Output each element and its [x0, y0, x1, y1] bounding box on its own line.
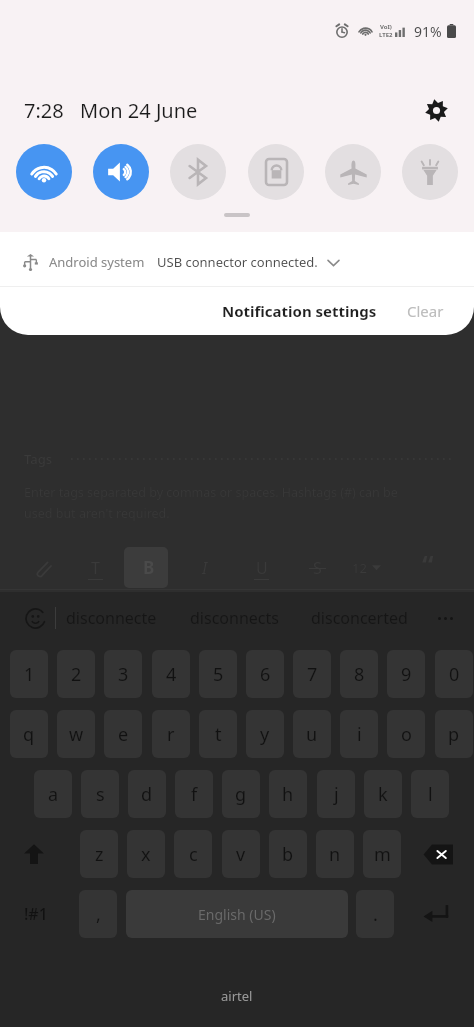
staticText: x	[141, 842, 151, 867]
button[interactable]: e	[104, 710, 142, 758]
staticText: airtel	[221, 987, 253, 1005]
staticText: I	[202, 557, 208, 579]
button[interactable]: 2	[57, 650, 95, 698]
button[interactable]: z	[80, 830, 118, 878]
button[interactable]: x	[127, 830, 165, 878]
button[interactable]: disconcerted	[311, 592, 408, 644]
staticText: q	[23, 722, 35, 747]
button[interactable]: disconnecte	[66, 592, 157, 644]
button[interactable]: Quick setting toggle	[93, 144, 149, 200]
staticText: e	[118, 722, 129, 747]
staticText: disconnecte	[66, 607, 157, 629]
button[interactable]: i	[340, 710, 378, 758]
button[interactable]: Android system	[24, 240, 474, 284]
staticText: disconnects	[190, 607, 279, 629]
button[interactable]: 9	[387, 650, 425, 698]
staticText: .	[373, 902, 378, 927]
button[interactable]: Notification settings	[212, 291, 387, 331]
button[interactable]: d	[128, 770, 166, 818]
button[interactable]: p	[435, 710, 473, 758]
button[interactable]: 0	[435, 650, 473, 698]
button[interactable]: c	[174, 830, 212, 878]
button[interactable]: 6	[246, 650, 284, 698]
staticText: T	[91, 557, 100, 579]
button[interactable]: 8	[340, 650, 378, 698]
button[interactable]: Clear	[397, 291, 454, 331]
staticText: 3	[118, 662, 129, 687]
button[interactable]: r	[152, 710, 190, 758]
staticText: 91%	[414, 22, 442, 41]
button[interactable]: h	[269, 770, 307, 818]
button[interactable]: Shift	[8, 830, 60, 878]
button[interactable]: q	[10, 710, 48, 758]
staticText: 2	[71, 662, 82, 687]
staticText: USB connector connected.	[157, 253, 318, 271]
button[interactable]: Emoji suggestions	[14, 592, 56, 644]
staticText: c	[189, 842, 198, 867]
button[interactable]: B	[134, 545, 164, 590]
button[interactable]: n	[316, 830, 354, 878]
button[interactable]: Quick setting toggle	[325, 144, 381, 200]
button[interactable]: 1	[10, 650, 48, 698]
staticText: z	[95, 842, 104, 867]
staticText: Tags	[24, 450, 53, 468]
button[interactable]: u	[293, 710, 331, 758]
staticText: Mon 24 June	[80, 97, 198, 124]
button[interactable]: Quick setting toggle	[402, 144, 458, 200]
button[interactable]: j	[317, 770, 355, 818]
button[interactable]: 4	[152, 650, 190, 698]
button[interactable]: Quick setting toggle	[170, 144, 226, 200]
button[interactable]: “	[422, 547, 434, 582]
button[interactable]: a	[34, 770, 72, 818]
button[interactable]: !#1	[8, 890, 64, 938]
button[interactable]: v	[222, 830, 260, 878]
staticText: l	[428, 782, 433, 807]
button[interactable]: l	[411, 770, 449, 818]
button[interactable]: k	[364, 770, 402, 818]
staticText: i	[357, 722, 362, 747]
button[interactable]: y	[246, 710, 284, 758]
button[interactable]: English (US)	[126, 890, 348, 938]
staticText: !#1	[24, 903, 48, 925]
button[interactable]: m	[363, 830, 401, 878]
button[interactable]: o	[387, 710, 425, 758]
button[interactable]: t	[199, 710, 237, 758]
button[interactable]: disconnects	[190, 592, 279, 644]
button[interactable]: s	[81, 770, 119, 818]
button[interactable]: 5	[199, 650, 237, 698]
staticText: English (US)	[198, 905, 276, 924]
staticText: f	[191, 782, 198, 807]
button[interactable]: Backspace	[412, 830, 464, 878]
button[interactable]: Quick setting toggle	[248, 144, 304, 200]
staticText: a	[48, 782, 59, 807]
staticText: disconcerted	[311, 607, 408, 629]
staticText: 9	[401, 662, 412, 687]
staticText: m	[374, 842, 391, 867]
button[interactable]: Enter	[408, 890, 464, 938]
button[interactable]: Quick setting toggle	[16, 144, 72, 200]
button[interactable]: Settings	[418, 92, 454, 128]
button[interactable]: w	[57, 710, 95, 758]
staticText: b	[282, 842, 294, 867]
button[interactable]: g	[222, 770, 260, 818]
button[interactable]: 3	[104, 650, 142, 698]
button[interactable]: f	[175, 770, 213, 818]
staticText: w	[69, 722, 84, 747]
staticText: 1	[24, 662, 35, 687]
staticText: v	[236, 842, 246, 867]
staticText: Clear	[407, 301, 444, 321]
button[interactable]: 7	[293, 650, 331, 698]
button[interactable]: b	[269, 830, 307, 878]
staticText: y	[260, 722, 270, 747]
